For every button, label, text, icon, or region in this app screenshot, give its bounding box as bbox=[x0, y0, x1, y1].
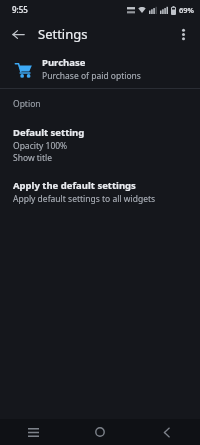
staticText: Purchase of paid options bbox=[42, 70, 141, 82]
staticText: Apply default settings to all widgets bbox=[13, 193, 156, 205]
button[interactable]: Recent apps bbox=[0, 419, 66, 445]
button[interactable]: Home bbox=[66, 419, 133, 445]
button[interactable]: Back bbox=[133, 419, 200, 445]
staticText: Apply the default settings bbox=[13, 179, 136, 192]
staticText: Settings bbox=[38, 25, 88, 43]
staticText: 9:55 bbox=[12, 4, 28, 15]
staticText: Option bbox=[13, 98, 41, 110]
staticText: Show title bbox=[13, 152, 53, 164]
staticText: Opacity 100% bbox=[13, 140, 68, 152]
button[interactable]: Apply the default settings bbox=[0, 172, 200, 213]
button[interactable]: Default setting bbox=[0, 119, 200, 172]
button[interactable]: Back bbox=[6, 22, 30, 46]
staticText: 69% bbox=[179, 5, 194, 15]
staticText: Purchase bbox=[42, 56, 86, 69]
button[interactable]: Purchase bbox=[0, 49, 200, 88]
staticText: Default setting bbox=[13, 126, 85, 139]
button[interactable]: More options bbox=[171, 22, 195, 46]
